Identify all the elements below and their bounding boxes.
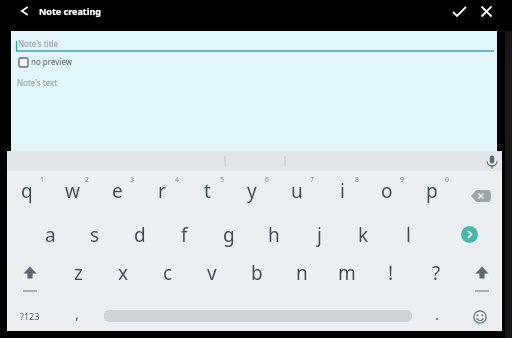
button[interactable]: e <box>87 176 147 206</box>
button[interactable]: j <box>289 220 349 250</box>
staticText: 9 <box>400 175 404 184</box>
button[interactable] <box>12 0 38 31</box>
staticText: p <box>426 178 438 204</box>
staticText: m <box>338 260 356 286</box>
button[interactable]: , <box>47 298 107 328</box>
button[interactable]: z <box>48 258 108 288</box>
staticText: k <box>358 222 369 248</box>
button[interactable]: ?123 <box>0 301 60 331</box>
button[interactable] <box>474 2 500 29</box>
button[interactable] <box>468 261 496 287</box>
staticText: w <box>65 178 80 204</box>
button[interactable] <box>465 185 497 207</box>
button[interactable]: w <box>42 176 102 206</box>
button[interactable]: i <box>312 176 372 206</box>
staticText: 8 <box>355 175 359 184</box>
staticText: 7 <box>310 175 314 184</box>
staticText: s <box>90 222 100 248</box>
staticText: 5 <box>220 175 224 184</box>
staticText: 3 <box>130 175 134 184</box>
button[interactable]: f <box>154 220 214 250</box>
staticText: u <box>291 178 303 204</box>
button[interactable]: b <box>227 258 287 288</box>
button[interactable]: d <box>110 220 170 250</box>
button[interactable] <box>446 2 472 29</box>
button[interactable]: x <box>93 258 153 288</box>
button[interactable]: r <box>132 176 192 206</box>
button[interactable]: Note's text <box>14 75 494 145</box>
staticText: b <box>251 260 263 286</box>
staticText: Note's title <box>18 38 59 49</box>
button[interactable]: ! <box>361 258 421 288</box>
staticText: z <box>74 260 83 286</box>
staticText: q <box>21 178 33 204</box>
button[interactable] <box>7 151 502 171</box>
button[interactable]: Note's title <box>14 36 494 54</box>
staticText: ?123 <box>20 310 40 322</box>
staticText: e <box>112 178 123 204</box>
button[interactable] <box>469 306 491 328</box>
button[interactable]: m <box>317 258 377 288</box>
staticText: r <box>158 178 166 204</box>
staticText: ? <box>432 260 441 286</box>
staticText: 1 <box>40 175 44 184</box>
staticText: no preview <box>31 56 73 67</box>
staticText: ! <box>388 260 394 286</box>
staticText: y <box>247 178 257 204</box>
button[interactable]: p <box>402 176 462 206</box>
button[interactable]: o <box>357 176 417 206</box>
button[interactable]: c <box>138 258 198 288</box>
button[interactable] <box>461 226 478 243</box>
button[interactable]: u <box>267 176 327 206</box>
staticText: v <box>207 260 217 286</box>
button[interactable]: n <box>272 258 332 288</box>
button[interactable]: g <box>199 220 259 250</box>
staticText: x <box>118 260 129 286</box>
staticText: o <box>381 178 393 204</box>
button[interactable]: k <box>333 220 393 250</box>
staticText: g <box>223 222 235 248</box>
staticText: h <box>268 222 280 248</box>
button[interactable]: a <box>20 220 80 250</box>
staticText: l <box>406 222 411 248</box>
staticText: i <box>340 178 345 204</box>
staticText: c <box>163 260 173 286</box>
staticText: 6 <box>265 175 269 184</box>
staticText: n <box>296 260 308 286</box>
button[interactable] <box>16 261 44 287</box>
staticText: 4 <box>175 175 179 184</box>
staticText: j <box>317 222 322 248</box>
button[interactable]: . <box>407 299 467 329</box>
staticText: Note's text <box>17 77 58 88</box>
button[interactable]: y <box>222 176 282 206</box>
button[interactable]: ? <box>406 258 466 288</box>
button[interactable]: l <box>378 220 438 250</box>
staticText: . <box>435 304 440 324</box>
staticText: f <box>181 222 188 248</box>
button[interactable]: t <box>177 176 237 206</box>
staticText: t <box>204 178 211 204</box>
staticText: 2 <box>85 175 89 184</box>
staticText: , <box>75 303 80 323</box>
button[interactable]: s <box>65 220 125 250</box>
staticText: Note creating <box>39 5 101 17</box>
staticText: a <box>45 222 56 248</box>
button[interactable]: h <box>244 220 304 250</box>
staticText: d <box>134 222 146 248</box>
staticText: 0 <box>445 175 449 184</box>
button[interactable]: v <box>182 258 242 288</box>
button[interactable]: q <box>0 176 57 206</box>
button[interactable]: no preview <box>16 56 106 70</box>
